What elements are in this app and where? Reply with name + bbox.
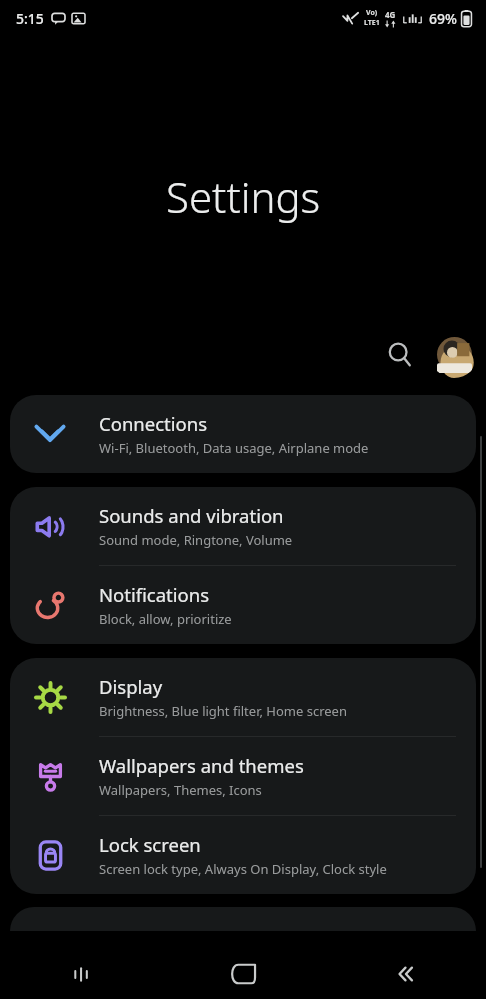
staticText: 5:15 bbox=[16, 9, 44, 28]
button[interactable]: Back bbox=[324, 949, 486, 999]
staticText: Notifications bbox=[99, 582, 210, 607]
staticText: Display bbox=[99, 674, 163, 699]
button[interactable]: Connections bbox=[10, 395, 476, 473]
button[interactable]: Home bbox=[162, 949, 324, 999]
button[interactable]: Sounds and vibration bbox=[10, 487, 476, 565]
staticText: 4G bbox=[385, 9, 396, 20]
staticText: 69% bbox=[429, 9, 457, 28]
staticText: Settings bbox=[166, 168, 321, 225]
staticText: Screen lock type, Always On Display, Clo… bbox=[99, 860, 387, 878]
staticText: Vo) bbox=[366, 8, 378, 18]
button[interactable]: Notifications bbox=[10, 566, 476, 644]
staticText: Block, allow, prioritize bbox=[99, 610, 232, 628]
staticText: Wi-Fi, Bluetooth, Data usage, Airplane m… bbox=[99, 439, 369, 457]
staticText: Brightness, Blue light filter, Home scre… bbox=[99, 702, 347, 720]
button[interactable]: Recent apps bbox=[0, 949, 162, 999]
staticText: Lock screen bbox=[99, 832, 201, 857]
button[interactable]: Display bbox=[10, 658, 476, 736]
button[interactable]: Wallpapers and themes bbox=[10, 737, 476, 815]
staticText: LTE1 bbox=[364, 18, 380, 28]
button[interactable] bbox=[10, 907, 476, 931]
button[interactable]: Search settings bbox=[375, 330, 423, 378]
staticText: Sound mode, Ringtone, Volume bbox=[99, 531, 293, 549]
button[interactable]: Lock screen bbox=[10, 816, 476, 894]
staticText: Connections bbox=[99, 411, 208, 436]
button[interactable]: Samsung account profile bbox=[430, 330, 478, 378]
staticText: Wallpapers, Themes, Icons bbox=[99, 781, 262, 799]
staticText: Wallpapers and themes bbox=[99, 753, 304, 778]
staticText: Sounds and vibration bbox=[99, 503, 284, 528]
